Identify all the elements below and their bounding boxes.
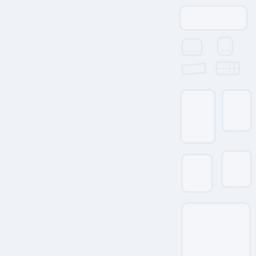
button[interactable]: Tile 2 [222,90,251,131]
button[interactable]: Tile 3 [182,154,212,192]
button[interactable]: Tile 1 [181,90,215,143]
button[interactable]: Tile 4 [222,151,251,187]
button[interactable]: Search [180,6,247,30]
